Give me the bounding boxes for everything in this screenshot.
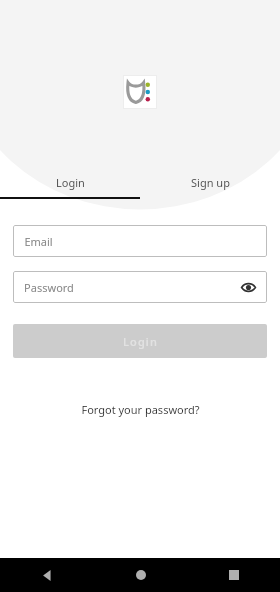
button[interactable]: Email bbox=[13, 225, 267, 257]
button[interactable]: Recent apps bbox=[187, 558, 280, 592]
button[interactable]: Show password bbox=[238, 277, 258, 297]
staticText: Password bbox=[24, 280, 74, 295]
staticText: Forgot your password? bbox=[81, 402, 200, 417]
button[interactable]: Back bbox=[0, 558, 94, 592]
staticText: Email bbox=[24, 234, 53, 249]
button[interactable]: Home bbox=[94, 558, 187, 592]
button[interactable]: Sign up bbox=[140, 168, 280, 197]
staticText: Login bbox=[56, 175, 85, 190]
staticText: Login bbox=[123, 334, 158, 349]
button[interactable]: Password bbox=[13, 271, 267, 303]
button[interactable]: Forgot your password? bbox=[0, 396, 280, 423]
button[interactable]: Login bbox=[0, 168, 140, 197]
staticText: Sign up bbox=[191, 175, 230, 190]
